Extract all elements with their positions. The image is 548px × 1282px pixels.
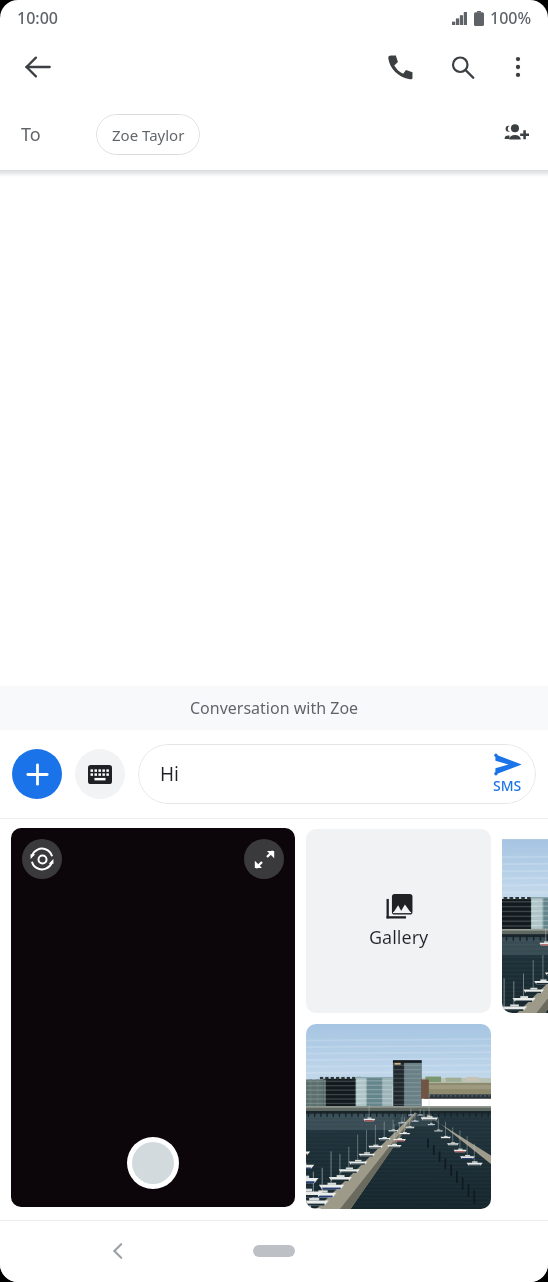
button[interactable]: Switch camera xyxy=(22,839,62,879)
button[interactable]: Keyboard xyxy=(75,749,125,799)
button[interactable]: Take photo xyxy=(127,1137,179,1189)
button[interactable]: Add people xyxy=(492,110,540,158)
button[interactable]: Gallery xyxy=(306,829,491,1013)
button[interactable]: Call xyxy=(378,45,422,89)
button[interactable] xyxy=(306,1024,491,1209)
staticText: Gallery xyxy=(369,925,429,950)
staticText: 10:00 xyxy=(17,7,58,29)
button[interactable] xyxy=(502,829,548,1013)
button[interactable]: Back xyxy=(14,43,62,91)
button[interactable]: Switch camera xyxy=(11,828,295,1207)
button[interactable]: Zoe Taylor xyxy=(96,114,200,155)
button[interactable]: Back xyxy=(98,1231,138,1271)
staticText: Zoe Taylor xyxy=(112,125,185,145)
button[interactable]: Expand xyxy=(244,839,284,879)
button[interactable]: Add attachment xyxy=(12,749,62,799)
button[interactable]: Hi xyxy=(138,744,536,804)
button[interactable]: More options xyxy=(496,45,540,89)
button[interactable]: Search xyxy=(440,45,484,89)
staticText: Hi xyxy=(160,761,179,787)
staticText: To xyxy=(21,122,41,147)
staticText: SMS xyxy=(493,776,522,795)
button[interactable]: Home xyxy=(253,1245,295,1257)
staticText: Conversation with Zoe xyxy=(190,697,359,719)
staticText: 100% xyxy=(490,7,532,29)
